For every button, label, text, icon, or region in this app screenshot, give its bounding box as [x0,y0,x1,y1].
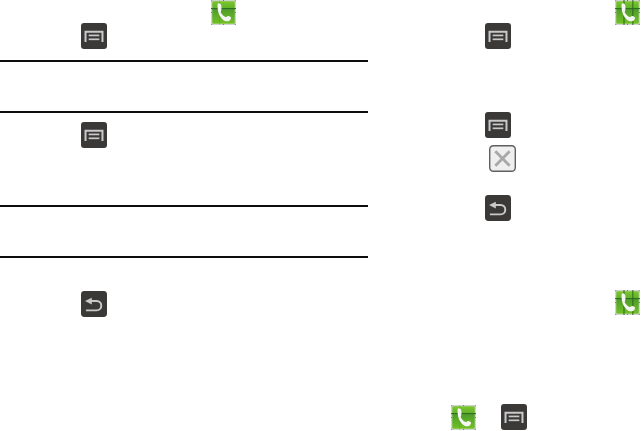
button[interactable]: Show keyboard [485,23,511,49]
button[interactable]: Back [485,195,511,221]
button[interactable]: Show keyboard [485,112,511,138]
button[interactable]: Phone [211,0,236,25]
button[interactable]: Show keyboard [81,122,107,148]
button[interactable]: Back [81,291,107,317]
button[interactable]: Show keyboard [81,23,107,49]
button[interactable]: Phone [451,405,476,430]
button[interactable]: Show keyboard [501,404,527,430]
button[interactable]: Close [489,145,516,172]
button[interactable]: Phone [615,0,640,25]
button[interactable]: Phone [615,290,640,315]
